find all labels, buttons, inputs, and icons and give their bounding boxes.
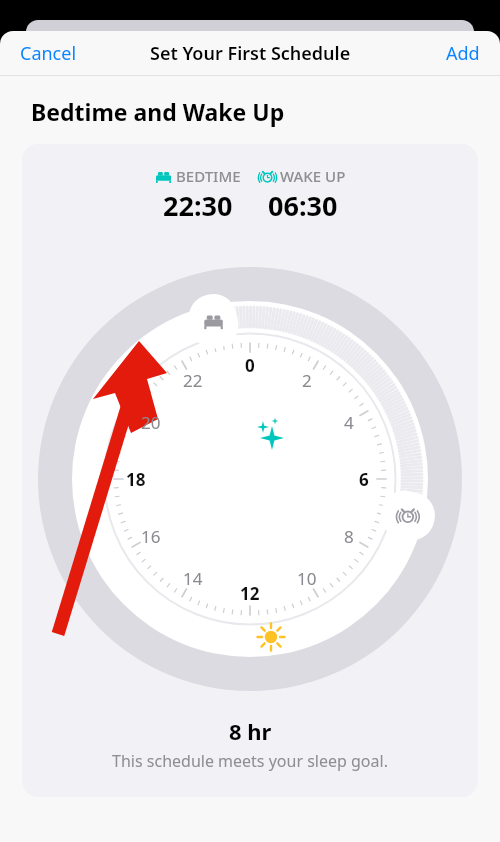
staticText: 22 [183,369,203,392]
button[interactable]: Add [434,33,492,74]
staticText: 14 [183,567,203,590]
other: Wake up [259,168,276,185]
staticText: BEDTIME [176,166,241,186]
staticText: 06:30 [268,187,338,224]
staticText: WAKE UP [280,166,346,186]
staticText: Add [446,41,480,66]
staticText: 16 [141,525,161,548]
staticText: 8 [344,525,354,548]
staticText: Set Your First Schedule [150,41,351,66]
other: Bedtime [155,168,172,185]
staticText: This schedule meets your sleep goal. [112,750,388,772]
staticText: 12 [240,582,260,605]
staticText: 18 [126,468,146,491]
staticText: 4 [344,411,354,434]
staticText: 0 [245,354,255,377]
staticText: 20 [141,411,161,434]
staticText: 22:30 [163,187,233,224]
staticText: 8 hr [229,716,272,746]
staticText: Cancel [20,41,77,66]
staticText: 10 [297,567,317,590]
button[interactable]: Cancel [8,33,89,74]
staticText: Bedtime and Wake Up [31,96,285,127]
staticText: 2 [302,369,312,392]
staticText: 6 [359,468,369,491]
